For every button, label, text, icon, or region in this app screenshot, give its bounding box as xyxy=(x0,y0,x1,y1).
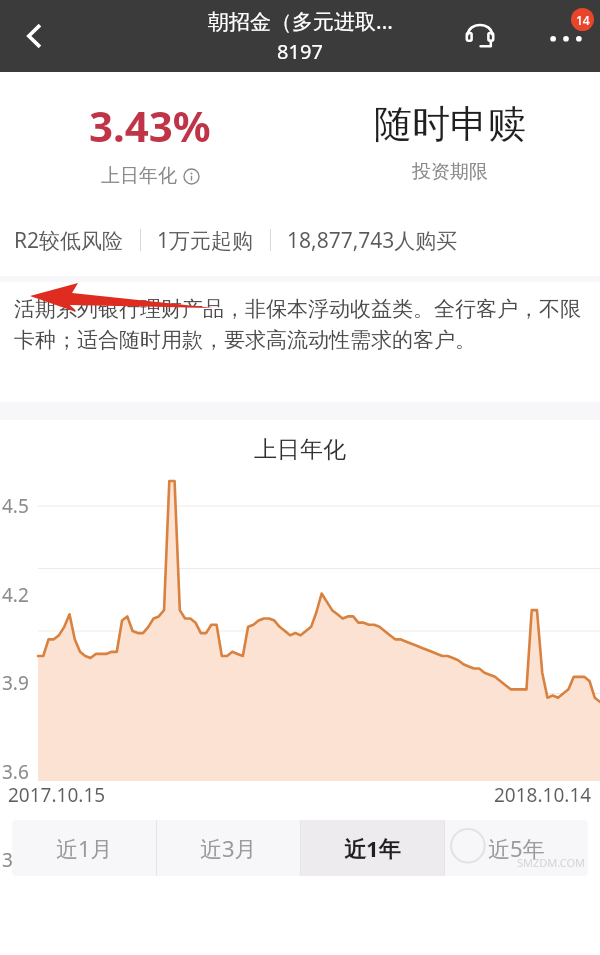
staticText: 2017.10.15 xyxy=(8,782,106,808)
staticText: 近3月 xyxy=(200,833,257,863)
staticText: SMZDM.COM xyxy=(517,855,586,870)
staticText: 8197 xyxy=(277,38,323,65)
button[interactable]: Customer service xyxy=(452,8,508,64)
staticText: 2018.10.14 xyxy=(494,782,592,808)
button[interactable]: More options xyxy=(536,6,596,66)
staticText: 14 xyxy=(576,12,590,28)
button[interactable]: 近5年 xyxy=(445,820,588,876)
button[interactable]: 近1月 xyxy=(12,820,156,876)
button[interactable]: Back xyxy=(6,8,62,64)
staticText: R2较低风险 xyxy=(14,226,124,255)
staticText: 随时申赎 xyxy=(374,100,526,148)
staticText: 3.6 xyxy=(2,759,29,785)
staticText: 投资期限 xyxy=(412,160,488,184)
staticText: 近1年 xyxy=(344,833,401,863)
staticText: 朝招金（多元进取... xyxy=(208,7,393,36)
staticText: 1万元起购 xyxy=(157,226,254,255)
staticText: 活期系列银行理财产品，非保本浮动收益类。全行客户，不限卡种；适合随时用款，要求高… xyxy=(14,296,586,353)
staticText: 近1月 xyxy=(56,833,113,863)
staticText: 4.2 xyxy=(2,582,29,608)
staticText: 18,877,743人购买 xyxy=(287,226,458,255)
staticText: 3.43% xyxy=(89,97,211,154)
staticText: 上日年化 xyxy=(101,164,177,188)
staticText: 近5年 xyxy=(488,833,545,863)
staticText: 3.9 xyxy=(2,670,29,696)
button[interactable]: 近3月 xyxy=(157,820,300,876)
staticText: 3.3 xyxy=(2,847,29,873)
staticText: 上日年化 xyxy=(254,435,346,464)
button[interactable]: 近1年 xyxy=(301,820,444,876)
staticText: 4.5 xyxy=(2,493,29,519)
